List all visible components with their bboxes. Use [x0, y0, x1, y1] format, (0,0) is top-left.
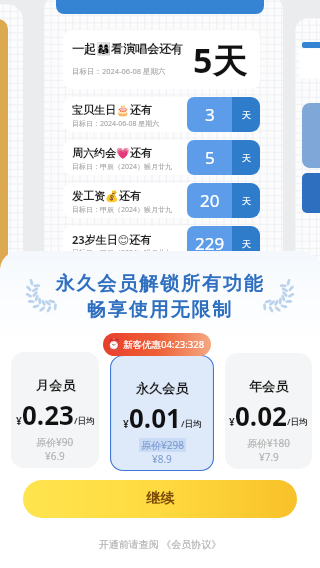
staticText: 229 [195, 232, 225, 255]
staticText: 永久会员解锁所有功能 [0, 272, 320, 296]
staticText: 目标日：甲辰（2024）猴月廿九 [72, 162, 173, 172]
staticText: 天 [242, 109, 251, 120]
button[interactable]: 宝贝生日🎂还有 [63, 97, 260, 132]
staticText: 天 [242, 195, 251, 206]
button[interactable]: 开通前请查阅 《会员协议》 [0, 537, 320, 551]
button[interactable]: 周六约会💗还有 [63, 140, 260, 175]
staticText: ¥ [16, 414, 22, 428]
staticText: ¥ [123, 417, 129, 431]
staticText: 发工资💰还有 [72, 189, 141, 203]
staticText: 原价¥298 [141, 438, 184, 452]
button[interactable]: 继续 [23, 480, 297, 518]
staticText: /日均 [181, 418, 202, 430]
staticText: 0.23 [22, 397, 74, 432]
staticText: 天 [242, 238, 251, 249]
button[interactable]: 永久会员 [110, 355, 214, 471]
staticText: 宝贝生日🎂还有 [72, 103, 152, 117]
staticText: 目标日：甲辰（2024）猴月廿九 [72, 205, 173, 215]
staticText: 新客优惠04:23:328 [123, 338, 205, 351]
staticText: 0.02 [235, 398, 287, 433]
staticText: 畅享使用无限制 [0, 298, 320, 322]
staticText: 继续 [146, 490, 174, 508]
staticText: 原价¥180 [247, 436, 290, 450]
staticText: ¥7.9 [259, 450, 279, 464]
staticText: 0.01 [129, 400, 181, 435]
staticText: ¥6.9 [45, 449, 65, 463]
button[interactable]: 一起👩‍👩‍👧看演唱会还有 [63, 30, 260, 89]
staticText: 5 [205, 146, 215, 169]
staticText: 目标日：甲辰（2024）猴月廿九 [72, 248, 173, 258]
button[interactable]: ⏰ [103, 333, 211, 356]
staticText: 目标日：2024-06-08 星期六 [72, 66, 166, 76]
staticText: 20 [200, 189, 220, 212]
staticText: 天 [242, 152, 251, 163]
staticText: 5天 [193, 37, 247, 83]
staticText: 月会员 [36, 377, 75, 393]
staticText: 目标日：2024-06-08 星期六 [72, 119, 160, 129]
staticText: /日均 [74, 415, 95, 427]
button[interactable]: 月会员 [11, 352, 99, 468]
staticText: /日均 [287, 416, 308, 428]
button[interactable]: 发工资💰还有 [63, 183, 260, 218]
staticText: ¥8.9 [152, 452, 172, 466]
staticText: 年会员 [249, 378, 288, 394]
staticText: ¥ [229, 415, 235, 429]
staticText: 永久会员 [136, 380, 188, 396]
staticText: 3 [205, 103, 215, 126]
staticText: 23岁生日😊还有 [72, 232, 152, 247]
staticText: 原价¥90 [36, 435, 74, 449]
staticText: 一起👩‍👩‍👧看演唱会还有 [72, 41, 183, 56]
button[interactable]: 23岁生日😊还有 [63, 226, 260, 261]
button[interactable]: 年会员 [225, 353, 312, 469]
staticText: 周六约会💗还有 [72, 146, 152, 160]
staticText: ⏰ [107, 338, 121, 351]
